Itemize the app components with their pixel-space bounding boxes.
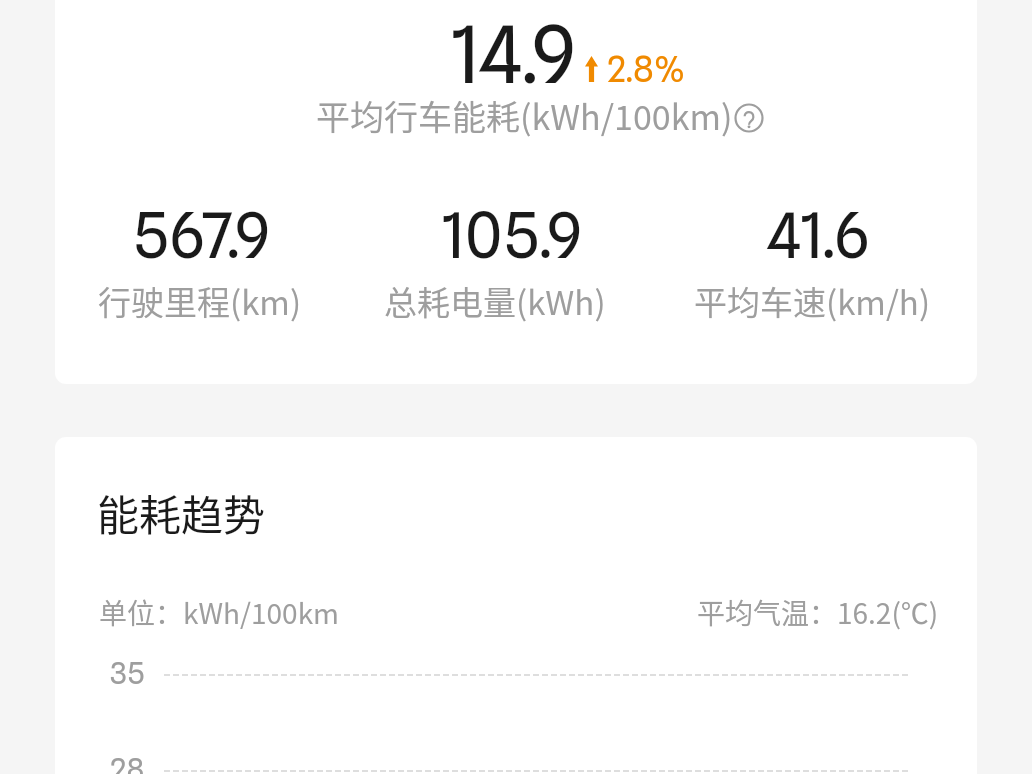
staticText: 能耗趋势 [97,482,266,543]
staticText: 平均行车能耗(kWh/100km) [316,91,733,140]
staticText: 35 [110,655,145,691]
staticText: 单位：kWh/100km [99,592,340,633]
staticText: 14.9 [450,8,576,102]
staticText: 平均气温：16.2(℃) [697,592,939,633]
staticText: 41.6 [767,198,869,272]
staticText: 2.8% [607,48,685,90]
staticText: 总耗电量(kWh) [384,277,606,325]
staticText: 平均车速(km/h) [694,277,931,325]
staticText: 567.9 [134,198,270,272]
staticText: 28 [110,751,145,774]
button[interactable]: 能耗说明 [734,103,764,133]
button[interactable]: 41.6 [670,198,977,324]
button[interactable]: 105.9 [355,198,655,324]
staticText: 行驶里程(km) [98,277,302,325]
other: 上升 [585,56,598,82]
staticText: 105.9 [441,198,582,272]
button[interactable]: 567.9 [55,198,355,324]
